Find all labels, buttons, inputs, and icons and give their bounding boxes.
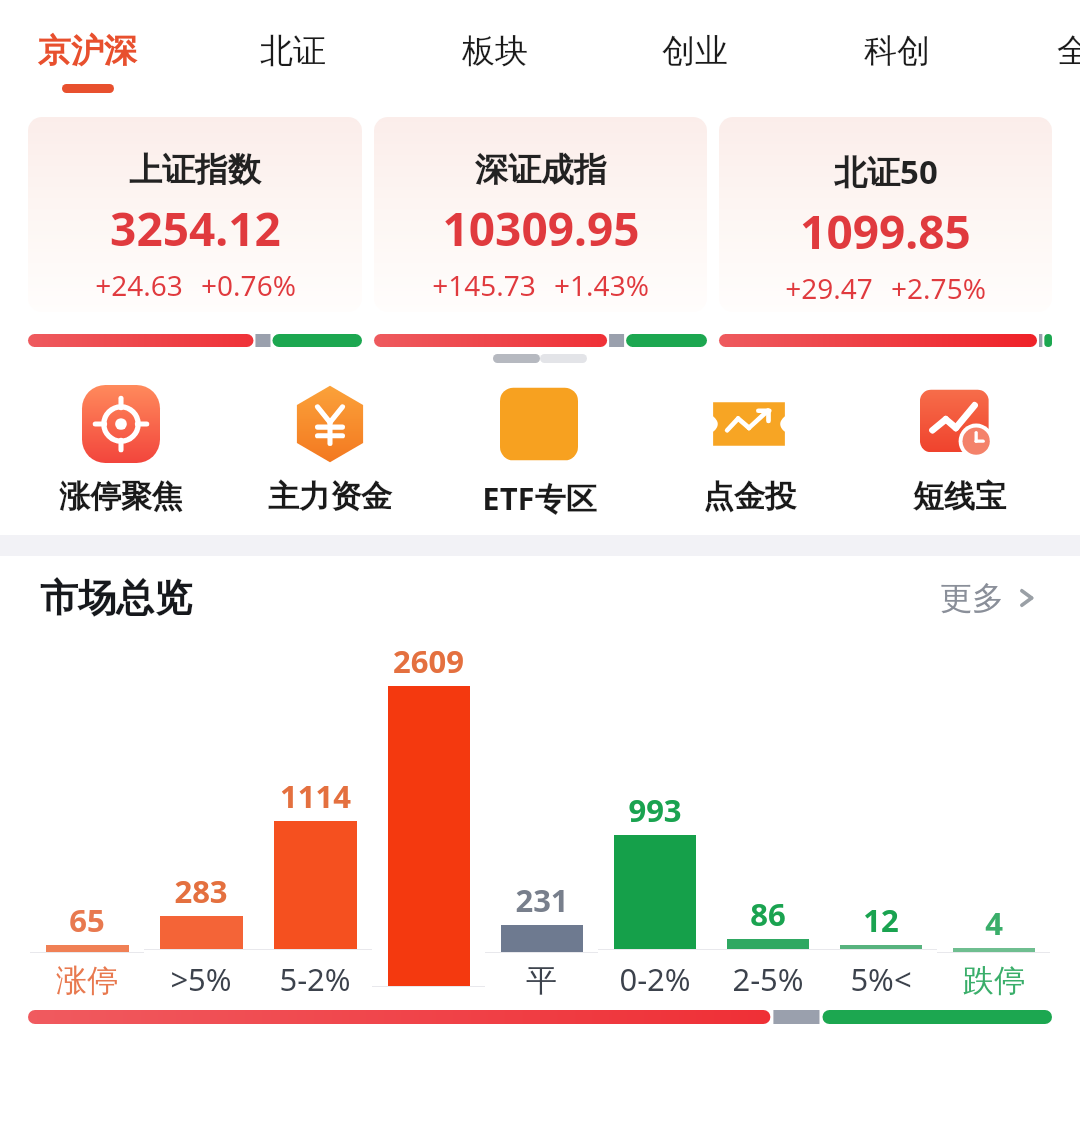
button[interactable]: 上证指数 [28,117,362,347]
staticText: +24.63 [95,266,183,304]
button[interactable]: 北证50 [719,117,1052,347]
button[interactable]: 1114 [258,775,372,1000]
staticText: 科创 [864,30,930,72]
staticText: 12 [863,899,899,941]
staticText: 短线宝 [913,477,1006,516]
staticText: 北证50 [834,149,938,194]
staticText: 1099.85 [800,200,971,263]
staticText: 更多 [940,578,1004,618]
other: 更多 [1014,585,1040,611]
staticText: 市场总览 [40,574,192,622]
staticText: 涨停 [56,961,118,1000]
button[interactable]: 短线宝 [854,385,1064,516]
staticText: 1114 [280,775,351,817]
staticText: 深证成指 [475,149,607,191]
staticText: 0-2% [619,958,691,1000]
staticText: 5-2% [279,958,351,1000]
button[interactable]: 4 [937,902,1050,1000]
button[interactable]: 更多 [940,578,1040,618]
button[interactable]: 2609 [372,640,485,1000]
button[interactable]: 283 [144,870,258,1000]
staticText: +145.73 [432,266,536,304]
button[interactable]: 板块 [460,30,530,72]
staticText: 板块 [462,30,528,72]
staticText: 3254.12 [110,197,281,260]
staticText: 283 [174,870,228,912]
staticText: 北证 [260,30,326,72]
button[interactable]: 主力资金 [225,385,434,516]
button[interactable]: 科创 [862,30,932,72]
staticText: 上证指数 [129,149,261,191]
button[interactable]: 创业 [660,30,730,72]
staticText: ETF专区 [482,477,597,519]
button[interactable]: 点金投 [644,385,854,516]
staticText: 主力资金 [268,477,392,516]
staticText: 涨停聚焦 [59,477,183,516]
staticText: 京沪深 [38,30,137,72]
button[interactable]: 全 [1055,30,1080,72]
button[interactable]: 京沪深 [36,30,139,93]
button[interactable]: 北证 [258,30,328,72]
staticText: 4 [985,902,1003,944]
button[interactable]: 86 [711,893,824,1000]
staticText: 创业 [662,30,728,72]
button[interactable]: 65 [30,899,144,1000]
staticText: 跌停 [963,961,1025,1000]
button[interactable]: 231 [485,879,598,1000]
button[interactable]: 涨停聚焦 [16,385,225,516]
staticText: 10309.95 [442,197,640,260]
staticText: +1.43% [554,266,649,304]
staticText: 231 [515,879,569,921]
button[interactable]: 993 [598,789,711,1000]
staticText: 2609 [393,640,464,682]
staticText: +29.47 [785,269,873,307]
staticText: +2.75% [891,269,986,307]
staticText: 86 [750,893,786,935]
staticText: 全 [1057,30,1080,72]
button[interactable]: 深证成指 [374,117,707,347]
staticText: 2-5% [732,958,804,1000]
staticText: +0.76% [201,266,296,304]
staticText: 平 [526,961,557,1000]
staticText: 993 [628,789,682,831]
button[interactable]: 12 [824,899,937,1000]
staticText: 65 [69,899,105,941]
button[interactable]: ETF专区 [434,385,644,519]
staticText: >5% [170,958,232,1000]
staticText: 点金投 [703,477,796,516]
staticText: 5%< [850,958,912,1000]
